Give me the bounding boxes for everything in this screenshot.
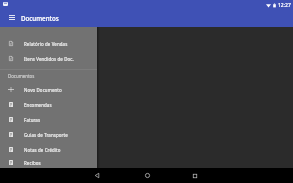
staticText: Encomendas [24,102,52,108]
button[interactable]: Recent apps [185,168,205,183]
button[interactable]: Itens Vendidos de Doc. [0,51,97,66]
button[interactable]: Novo Documento [0,82,97,97]
staticText: Recibos [24,160,41,166]
staticText: Notas de Crédito [24,147,61,153]
button[interactable]: Notas de Crédito [0,142,97,157]
button[interactable]: Encomendas [0,97,97,112]
staticText: Guias de Transporte [24,132,68,138]
staticText: Relatório de Vendas [24,41,68,47]
staticText: 12:27 [278,2,291,9]
staticText: Itens Vendidos de Doc. [24,56,74,62]
staticText: Documentos [21,14,59,22]
button[interactable]: Faturas [0,112,97,127]
button[interactable]: Open navigation drawer [6,10,18,27]
staticText: Novo Documento [24,87,62,93]
button[interactable]: Guias de Transporte [0,127,97,142]
button[interactable]: Recibos [0,157,97,168]
staticText: Documentos [8,73,35,79]
staticText: Faturas [24,117,41,123]
button[interactable]: Relatório de Vendas [0,36,97,51]
button[interactable]: Home [137,168,157,183]
button[interactable]: Back [87,168,107,183]
